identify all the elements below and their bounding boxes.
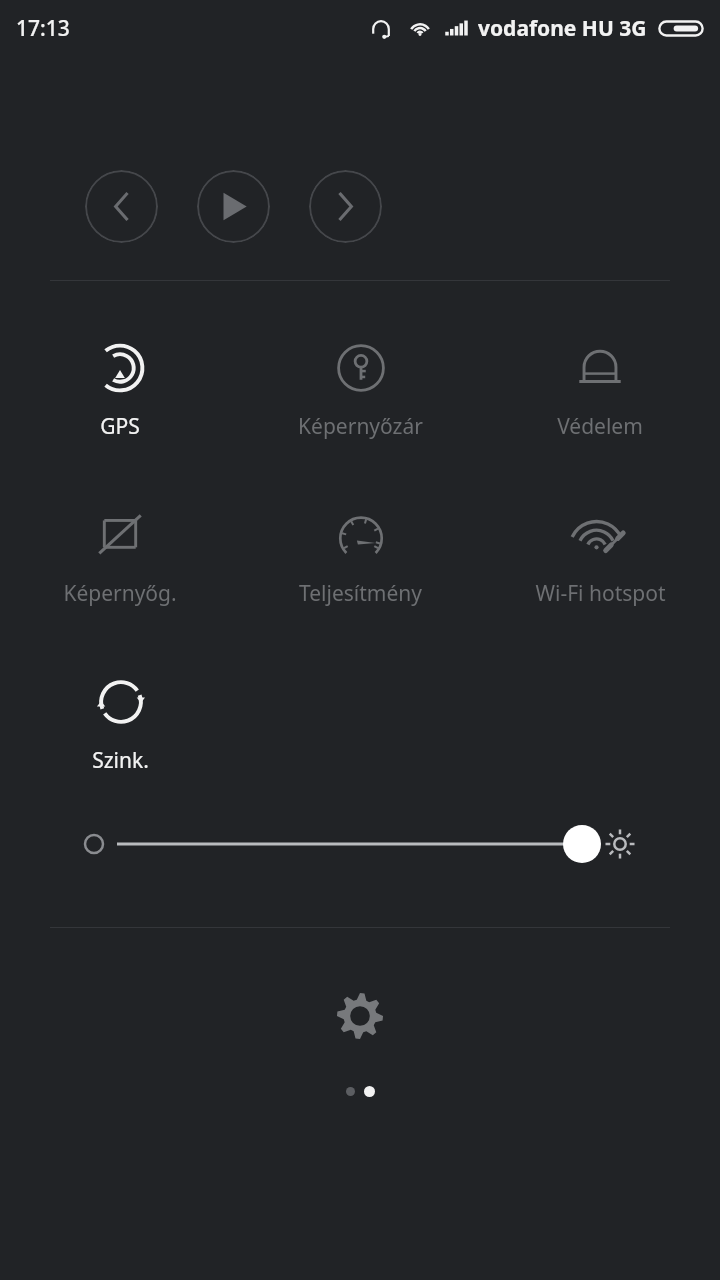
button[interactable]: GPS — [86, 336, 154, 445]
staticText: Szink. — [92, 746, 149, 775]
staticText: Wi-Fi hotspot — [535, 579, 666, 608]
button[interactable]: Wi-Fi hotspot — [529, 503, 672, 612]
staticText: Védelem — [557, 412, 643, 441]
button[interactable]: Previous — [85, 170, 158, 243]
button[interactable]: Képernyőzár — [292, 336, 429, 445]
staticText: 17:13 — [16, 14, 70, 43]
staticText: Képernyőzár — [298, 412, 423, 441]
button[interactable]: Play — [197, 170, 270, 243]
staticText: Teljesítmény — [299, 579, 422, 608]
staticText: vodafone HU 3G — [478, 14, 647, 43]
button[interactable]: Védelem — [551, 336, 649, 445]
button[interactable]: Képernyőg. — [57, 503, 183, 612]
button[interactable]: Brightness — [0, 819, 720, 869]
staticText: GPS — [100, 412, 140, 441]
button[interactable]: Settings — [330, 986, 390, 1046]
button[interactable]: Next — [309, 170, 382, 243]
button[interactable]: Szink. — [86, 670, 155, 779]
button[interactable]: Teljesítmény — [293, 503, 428, 612]
staticText: Képernyőg. — [63, 579, 177, 608]
